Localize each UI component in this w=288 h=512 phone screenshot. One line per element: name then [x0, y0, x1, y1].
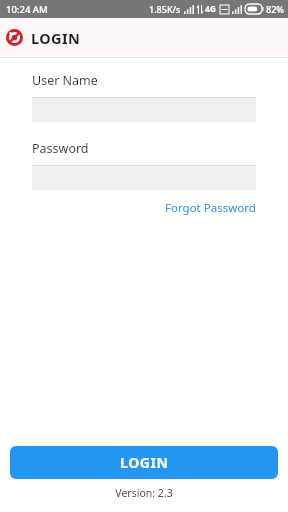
- button[interactable]: LOGIN: [10, 446, 278, 479]
- staticText: 10:24 AM: [6, 3, 48, 16]
- staticText: LOGIN: [120, 453, 169, 472]
- staticText: Password: [32, 140, 89, 157]
- staticText: Version: 2.3: [115, 486, 173, 500]
- staticText: Forgot Password: [165, 200, 256, 216]
- staticText: 82%: [266, 3, 284, 15]
- button[interactable]: Forgot Password: [165, 200, 256, 216]
- button[interactable]: Password input: [32, 165, 256, 190]
- staticText: User Name: [32, 72, 98, 89]
- other: App logo: [6, 29, 23, 46]
- staticText: 4G: [205, 3, 217, 15]
- staticText: LOGIN: [31, 28, 81, 48]
- staticText: 1.85K/s: [149, 3, 181, 15]
- button[interactable]: User name input: [32, 97, 256, 122]
